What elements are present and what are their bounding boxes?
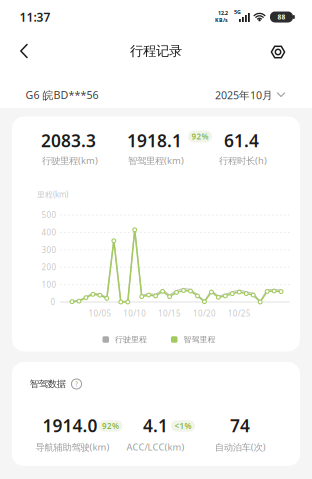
staticText: 12.2 <box>218 9 228 16</box>
staticText: KB/s <box>215 16 228 24</box>
staticText: 500 <box>41 210 56 220</box>
staticText: ACC/LCC(km) <box>126 441 184 453</box>
staticText: 88 <box>277 13 285 21</box>
button[interactable]: 2025年10月 <box>215 88 285 102</box>
staticText: <1% <box>174 421 191 431</box>
staticText: 智驾数据 <box>30 378 66 390</box>
staticText: 1918.1 <box>127 129 182 152</box>
staticText: 10/10 <box>123 308 146 319</box>
staticText: 61.4 <box>224 129 259 152</box>
staticText: 1914.0 <box>42 414 97 437</box>
staticText: 行驶里程 <box>115 335 147 344</box>
staticText: 里程(km) <box>37 189 68 200</box>
staticText: 11:37 <box>19 9 50 25</box>
staticText: 100 <box>41 279 56 290</box>
staticText: 智驾里程(km) <box>128 154 184 167</box>
button[interactable]: Back <box>12 39 36 63</box>
staticText: 92% <box>102 421 119 431</box>
staticText: 4.1 <box>143 414 168 437</box>
staticText: G6 皖BD***56 <box>25 88 98 102</box>
staticText: 智驾里程 <box>183 335 215 344</box>
staticText: 10/25 <box>228 308 251 319</box>
staticText: 行程记录 <box>130 43 182 59</box>
staticText: 2025年10月 <box>215 88 273 102</box>
staticText: 10/05 <box>88 308 111 319</box>
staticText: 导航辅助驾驶(km) <box>35 441 109 453</box>
button[interactable]: Help <box>71 378 82 389</box>
staticText: 74 <box>230 414 250 437</box>
staticText: 行程时长(h) <box>219 154 267 167</box>
staticText: 自动泊车(次) <box>215 441 266 453</box>
staticText: 92% <box>191 131 208 142</box>
button[interactable]: G6 皖BD***56 <box>25 88 98 102</box>
staticText: 200 <box>41 262 56 272</box>
staticText: 0 <box>50 297 55 307</box>
staticText: 300 <box>41 244 56 255</box>
staticText: ? <box>75 380 78 388</box>
staticText: 2083.3 <box>41 129 96 152</box>
button[interactable]: Settings <box>266 40 290 64</box>
staticText: 行驶里程(km) <box>42 154 98 167</box>
staticText: 10/20 <box>193 308 216 319</box>
staticText: 400 <box>41 227 56 238</box>
staticText: 5G <box>234 8 241 16</box>
staticText: 10/15 <box>158 308 181 319</box>
